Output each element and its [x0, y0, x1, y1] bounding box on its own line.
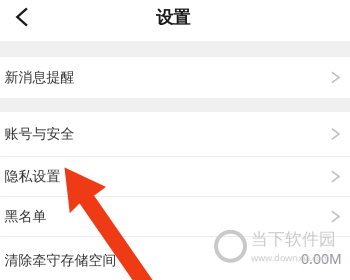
staticText: 0.00M: [301, 249, 342, 268]
staticText: www.downxia.com: [251, 252, 329, 264]
staticText: 新消息提醒: [4, 69, 74, 86]
button[interactable]: 清除牵守存储空间: [0, 237, 350, 280]
button[interactable]: 账号与安全: [0, 112, 350, 156]
staticText: 设置: [156, 7, 190, 28]
staticText: 账号与安全: [4, 125, 74, 143]
button[interactable]: 隐私设置: [0, 157, 350, 196]
button[interactable]: Back: [7, 5, 37, 35]
staticText: 隐私设置: [4, 168, 60, 185]
staticText: 清除牵守存储空间: [4, 252, 116, 269]
button[interactable]: 新消息提醒: [0, 57, 350, 98]
staticText: 当下软件园: [251, 228, 336, 250]
button[interactable]: 黑名单: [0, 197, 350, 236]
staticText: 黑名单: [4, 208, 46, 225]
